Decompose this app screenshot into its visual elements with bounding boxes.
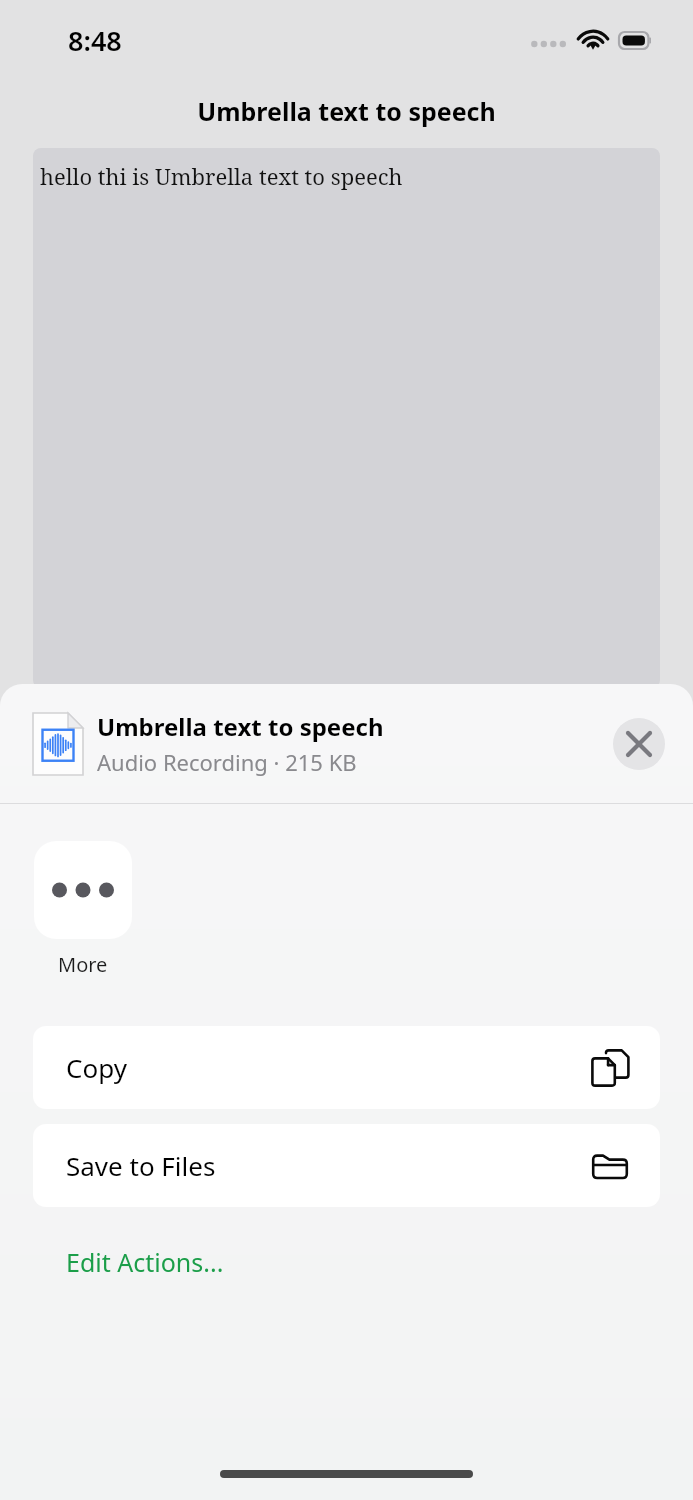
button[interactable]: Copy [33, 1026, 660, 1109]
staticText: 8:48 [68, 22, 122, 59]
staticText: Edit Actions... [66, 1245, 224, 1279]
staticText: hello thi is Umbrella text to speech [40, 161, 403, 191]
button[interactable]: Save to Files [33, 1124, 660, 1207]
staticText: More [58, 951, 108, 978]
staticText: Save to Files [66, 1148, 216, 1183]
button[interactable]: Umbrella text to speech [0, 684, 693, 803]
staticText: Audio Recording · 215 KB [97, 747, 357, 777]
button[interactable]: Edit Actions... [0, 1234, 693, 1290]
button[interactable]: Close [613, 718, 665, 770]
staticText: Copy [66, 1050, 127, 1085]
staticText: Umbrella text to speech [0, 94, 693, 128]
button[interactable]: hello thi is Umbrella text to speech [33, 148, 660, 688]
staticText: Umbrella text to speech [97, 710, 384, 743]
button[interactable]: More [33, 841, 133, 978]
